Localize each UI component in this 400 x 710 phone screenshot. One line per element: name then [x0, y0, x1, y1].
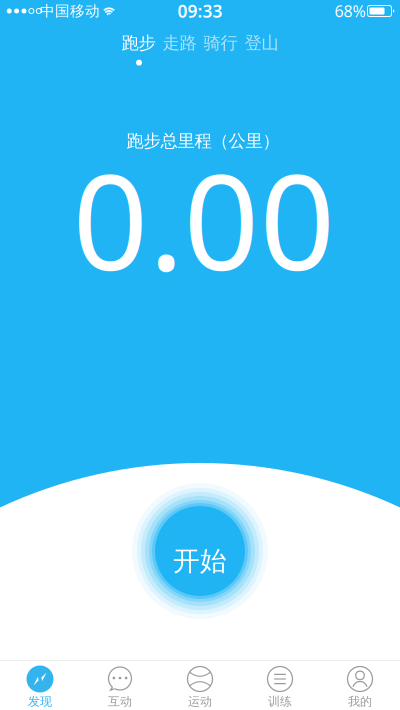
button[interactable]: 训练 [240, 660, 320, 710]
staticText: 开始 [173, 545, 227, 577]
staticText: 运动 [188, 694, 212, 709]
staticText: 跑步总里程（公里） [126, 130, 279, 152]
staticText: 跑步 [121, 32, 155, 54]
staticText: 登山 [244, 32, 278, 54]
staticText: 09:33 [177, 0, 222, 22]
staticText: 我的 [348, 694, 372, 709]
button[interactable]: 跑步 [121, 32, 155, 54]
button[interactable]: 走路 [162, 32, 196, 54]
staticText: 骑行 [203, 32, 237, 54]
staticText: 68% [334, 0, 365, 22]
staticText: 走路 [162, 32, 196, 54]
button[interactable]: 互动 [80, 660, 160, 710]
staticText: 发现 [28, 694, 52, 709]
staticText: 训练 [268, 694, 292, 709]
button[interactable]: 开始 [132, 483, 268, 619]
staticText: 0.00 [72, 131, 335, 307]
button[interactable]: 我的 [320, 660, 400, 710]
button[interactable]: 运动 [160, 660, 240, 710]
staticText: 中国移动 [40, 2, 100, 20]
button[interactable]: 骑行 [203, 32, 237, 54]
button[interactable]: 登山 [244, 32, 278, 54]
button[interactable]: 发现 [0, 660, 80, 710]
staticText: 互动 [108, 694, 132, 709]
